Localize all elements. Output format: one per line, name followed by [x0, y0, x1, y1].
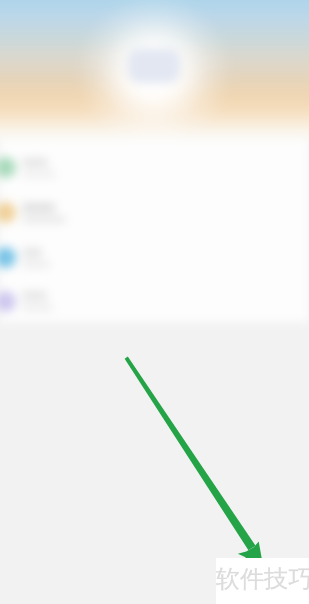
button[interactable]: [0, 235, 309, 280]
button[interactable]: [0, 280, 309, 322]
staticText: 软件技巧: [216, 564, 309, 594]
button[interactable]: [0, 145, 309, 190]
button[interactable]: [0, 190, 309, 235]
